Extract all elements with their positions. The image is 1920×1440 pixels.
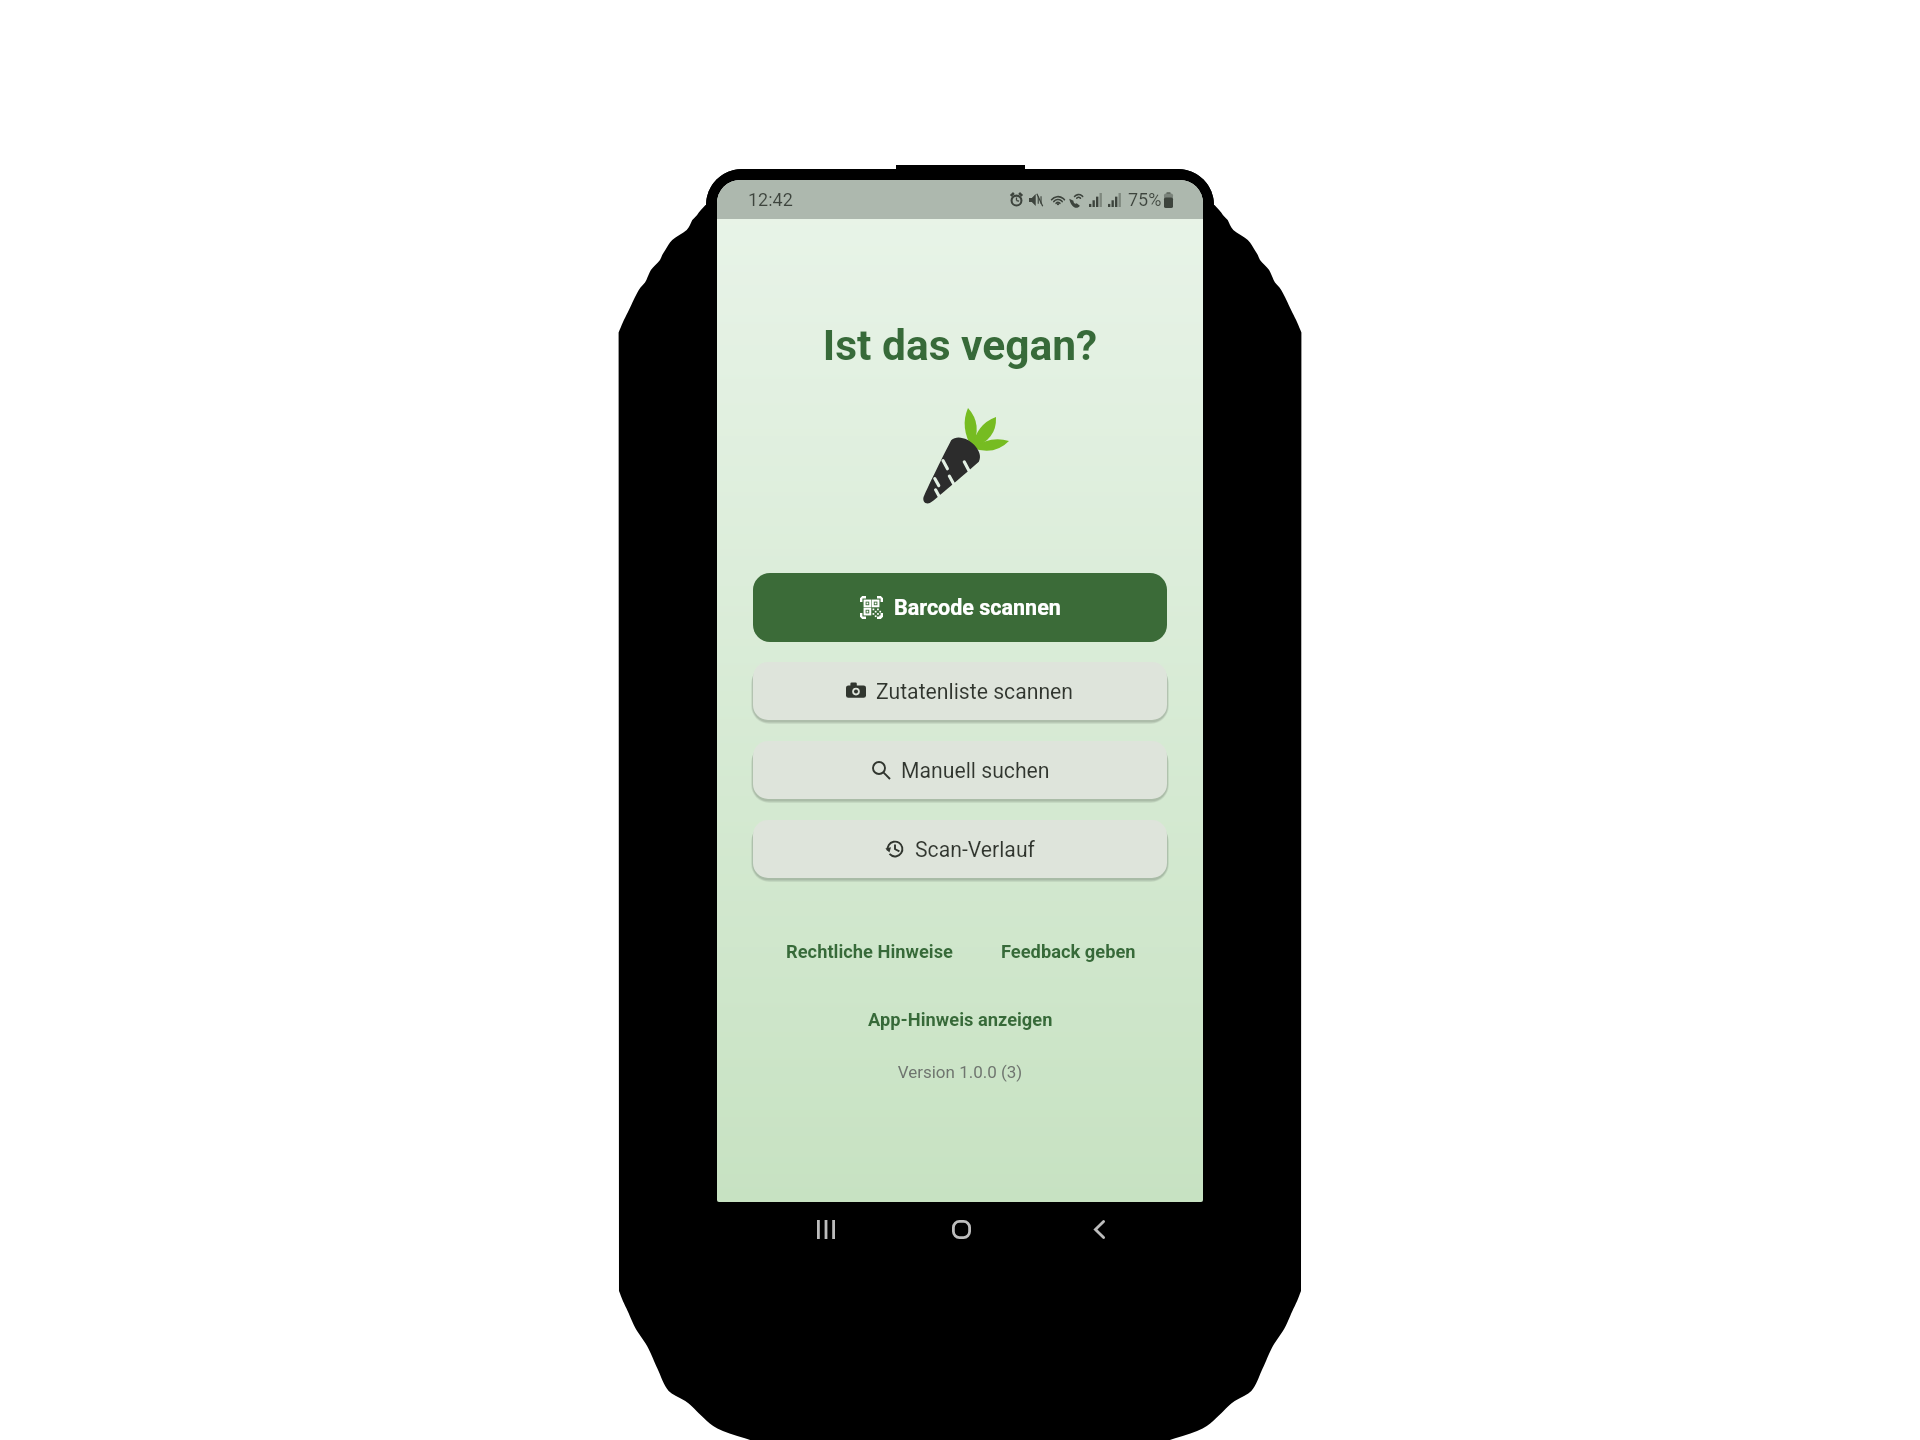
staticText: Ist das vegan? (717, 321, 1203, 371)
button[interactable]: Recent apps (804, 1207, 848, 1251)
button[interactable]: Rechtliche Hinweise (780, 933, 959, 970)
staticText: Scan-Verlauf (915, 837, 1035, 862)
staticText: Manuell suchen (901, 758, 1050, 783)
staticText: Feedback geben (1001, 941, 1136, 962)
button[interactable]: App-Hinweis anzeigen (862, 1001, 1059, 1038)
staticText: Barcode scannen (894, 595, 1061, 620)
button[interactable]: Manuell suchen (753, 741, 1167, 799)
staticText: Zutatenliste scannen (876, 679, 1074, 704)
button[interactable]: Barcode scannen (753, 573, 1167, 642)
staticText: 12:42 (748, 189, 793, 210)
button[interactable]: Back (1077, 1207, 1121, 1251)
button[interactable]: Feedback geben (995, 933, 1142, 970)
staticText: Version 1.0.0 (3) (717, 1062, 1203, 1082)
staticText: 75% (1128, 189, 1162, 210)
staticText: App-Hinweis anzeigen (868, 1009, 1053, 1030)
button[interactable]: Home (939, 1207, 983, 1251)
button[interactable]: Zutatenliste scannen (753, 662, 1167, 720)
staticText: Rechtliche Hinweise (786, 941, 953, 962)
button[interactable]: Scan-Verlauf (753, 820, 1167, 878)
